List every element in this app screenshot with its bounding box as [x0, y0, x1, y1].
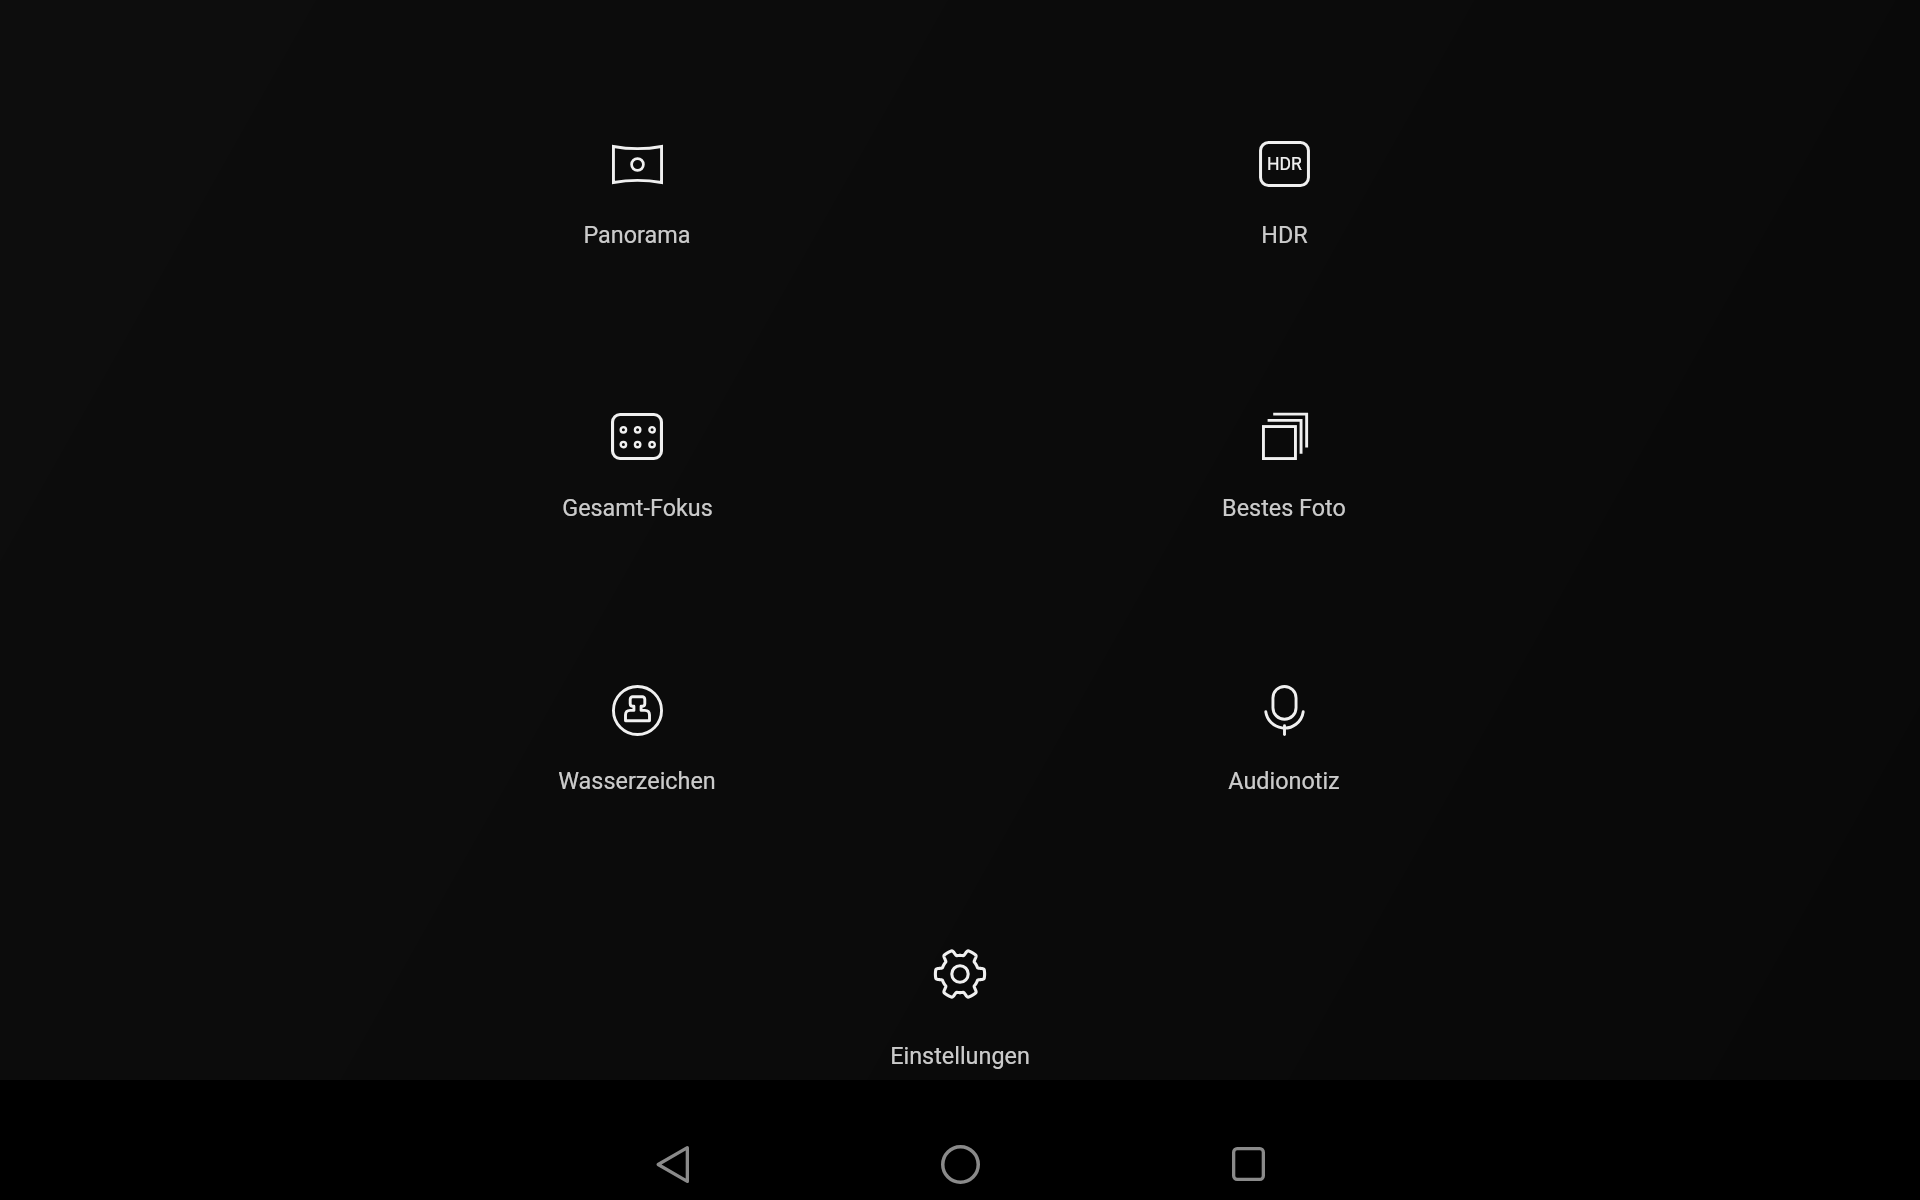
button[interactable]: Panorama [472, 114, 802, 254]
staticText: Bestes Foto [1222, 494, 1346, 521]
button[interactable]: HDR [1119, 114, 1449, 254]
staticText: Einstellungen [890, 1042, 1030, 1069]
button[interactable]: Home [906, 1080, 1014, 1200]
staticText: Gesamt-Fokus [562, 494, 713, 521]
button[interactable]: Recent apps [1194, 1080, 1302, 1200]
button[interactable]: Gesamt-Fokus [472, 386, 802, 527]
button[interactable]: Wasserzeichen [472, 660, 802, 800]
staticText: Panorama [583, 221, 691, 248]
staticText: HDR [1261, 221, 1308, 248]
button[interactable]: Einstellungen [795, 924, 1125, 1075]
button[interactable]: Bestes Foto [1119, 386, 1449, 527]
button[interactable]: Audionotiz [1119, 660, 1449, 800]
button[interactable]: Back [618, 1080, 726, 1200]
staticText: Wasserzeichen [558, 767, 716, 794]
staticText: HDR [1267, 154, 1302, 175]
staticText: Audionotiz [1228, 767, 1340, 794]
